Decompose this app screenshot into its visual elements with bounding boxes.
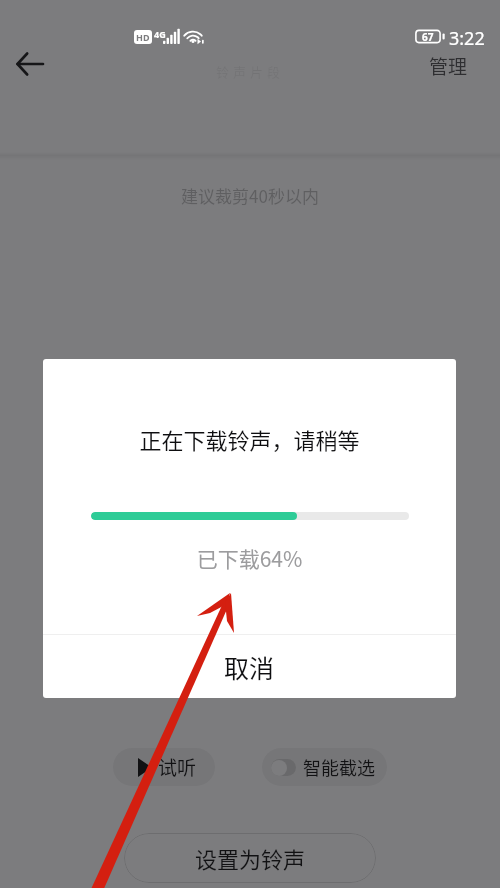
staticText: 已下载64%	[43, 543, 456, 573]
staticText: 智能截选	[303, 754, 375, 780]
button[interactable]: 试听	[113, 748, 215, 786]
staticText: 正在下载铃声，请稍等	[43, 423, 456, 455]
button[interactable]: 取消	[43, 635, 456, 698]
staticText: 设置为铃声	[195, 842, 306, 874]
staticText: 试听	[158, 753, 197, 781]
staticText: 3:22	[449, 26, 485, 51]
staticText: 取消	[224, 649, 275, 685]
staticText: 4G	[154, 28, 166, 40]
staticText: 建议裁剪40秒以内	[0, 183, 500, 208]
staticText: 铃声片段	[0, 62, 500, 81]
button[interactable]: 管理	[429, 42, 468, 90]
staticText: 67	[422, 30, 434, 44]
button[interactable]: Back	[6, 40, 54, 88]
button[interactable]: 设置为铃声	[124, 833, 376, 883]
button[interactable]: 智能截选	[262, 748, 387, 786]
staticText: HD	[136, 31, 150, 43]
staticText: 管理	[429, 52, 468, 80]
